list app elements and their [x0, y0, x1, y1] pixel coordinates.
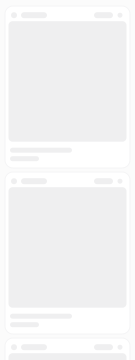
- button[interactable]: Loading post: [5, 6, 130, 168]
- button[interactable]: Loading post: [5, 338, 130, 360]
- button[interactable]: Loading post: [5, 172, 130, 334]
